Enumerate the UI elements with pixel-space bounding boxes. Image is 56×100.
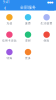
button[interactable]: Back bbox=[1, 4, 8, 10]
button[interactable]: 充值 bbox=[0, 13, 19, 26]
staticText: 信用卡还款 bbox=[2, 39, 17, 42]
button[interactable]: 信用卡还款 bbox=[0, 30, 19, 43]
staticText: 生活缴费 bbox=[41, 22, 53, 25]
staticText: 理财 bbox=[25, 39, 31, 42]
staticText: 9:41 bbox=[3, 0, 10, 4]
staticText: 缴费 bbox=[25, 22, 31, 25]
staticText: 保险 bbox=[44, 39, 50, 42]
staticText: 充值 bbox=[6, 22, 12, 25]
staticText: ‹ bbox=[4, 3, 6, 12]
staticText: 更多 bbox=[25, 56, 31, 60]
staticText: 全部服务 bbox=[20, 5, 36, 10]
button[interactable]: 理财 bbox=[19, 30, 37, 43]
button[interactable]: 更多 bbox=[19, 48, 37, 61]
staticText: 转账 bbox=[6, 56, 12, 60]
button[interactable]: 转账 bbox=[0, 48, 19, 61]
staticText: ●●● bbox=[47, 1, 53, 4]
button[interactable]: 生活缴费 bbox=[37, 13, 56, 26]
button[interactable]: 保险 bbox=[37, 30, 56, 43]
button[interactable]: 缴费 bbox=[19, 13, 37, 26]
